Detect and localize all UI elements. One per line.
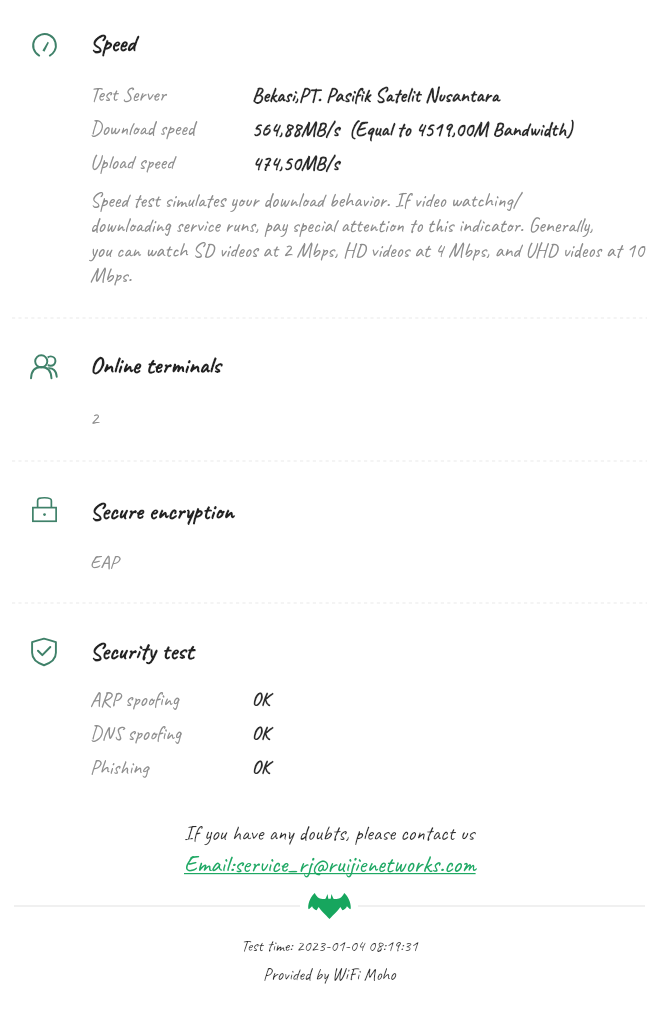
staticText: ARP spoofing xyxy=(90,687,179,712)
button[interactable]: Security test xyxy=(30,637,58,666)
staticText: Secure encryption xyxy=(90,496,234,526)
button[interactable]: Secure encryption xyxy=(32,497,57,522)
staticText: Email:service_rj@ruijienetworks.com xyxy=(184,849,476,879)
staticText: Download speed xyxy=(90,116,195,141)
staticText: Security test xyxy=(90,636,194,666)
staticText: EAP xyxy=(90,550,119,574)
staticText: Test time: 2023-01-04 08:19:31 xyxy=(241,936,418,956)
staticText: Test Server xyxy=(90,82,166,107)
staticText: 564,88MB/s (Equal to 4519,00M Bandwidth) xyxy=(252,117,573,142)
staticText: Speed test simulates your download behav… xyxy=(90,188,645,288)
staticText: 474,50MB/s xyxy=(252,151,340,176)
staticText: Bekasi,PT. Pasifik Satelit Nusantara xyxy=(252,83,499,108)
staticText: Speed xyxy=(90,28,136,58)
staticText: Upload speed xyxy=(90,150,174,175)
button[interactable]: Email:service_rj@ruijienetworks.com xyxy=(184,849,476,879)
staticText: 2 xyxy=(90,406,99,430)
button[interactable]: Online terminals xyxy=(29,353,60,380)
staticText: If you have any doubts, please contact u… xyxy=(184,820,475,846)
staticText: Phishing xyxy=(90,755,149,780)
button[interactable]: Speed xyxy=(32,33,57,58)
staticText: Online terminals xyxy=(90,350,221,380)
staticText: Provided by WiFi Moho xyxy=(263,964,396,985)
staticText: OK xyxy=(252,688,270,711)
staticText: OK xyxy=(252,756,270,779)
staticText: DNS spoofing xyxy=(90,721,182,746)
staticText: OK xyxy=(252,722,270,745)
